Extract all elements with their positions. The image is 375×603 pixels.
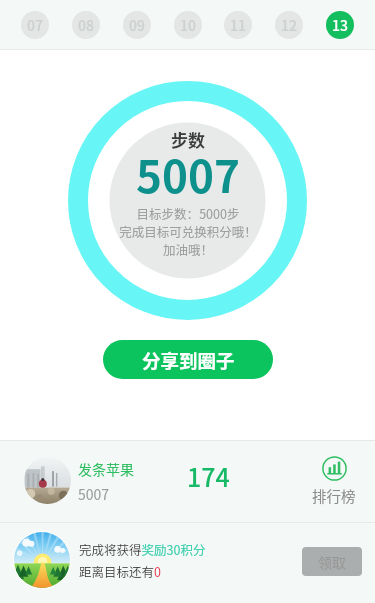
button[interactable]: 领取 (302, 547, 362, 576)
staticText: 发条苹果 (78, 459, 134, 479)
staticText: 完成将获得奖励30积分 (79, 540, 206, 558)
staticText: 距离目标还有0 (79, 562, 161, 580)
staticText: 11 (230, 15, 246, 35)
button[interactable]: 12 (275, 11, 303, 39)
staticText: 5007 (78, 484, 110, 504)
button[interactable]: 分享到圈子 (103, 340, 273, 379)
button[interactable]: 10 (174, 11, 202, 39)
staticText: 07 (27, 15, 43, 35)
button[interactable]: 09 (123, 11, 151, 39)
button[interactable]: 11 (224, 11, 252, 39)
staticText: 步数 (171, 127, 205, 152)
staticText: 10 (180, 15, 196, 35)
staticText: 08 (78, 15, 94, 35)
staticText: 13 (332, 15, 348, 35)
staticText: 目标步数：5000步 完成目标可兑换积分哦！ 加油哦！ (119, 204, 257, 258)
staticText: 174 (187, 458, 230, 494)
staticText: 分享到圈子 (142, 347, 235, 374)
staticText: 09 (129, 15, 145, 35)
button[interactable]: 08 (72, 11, 100, 39)
staticText: 12 (281, 15, 297, 35)
button[interactable]: 07 (21, 11, 49, 39)
staticText: 排行榜 (312, 485, 356, 506)
button[interactable]: 排行榜 (312, 456, 356, 506)
staticText: 5007 (136, 142, 240, 206)
staticText: 领取 (318, 552, 346, 572)
button[interactable]: 13 (326, 11, 354, 39)
button[interactable]: 发条苹果 (0, 441, 375, 522)
